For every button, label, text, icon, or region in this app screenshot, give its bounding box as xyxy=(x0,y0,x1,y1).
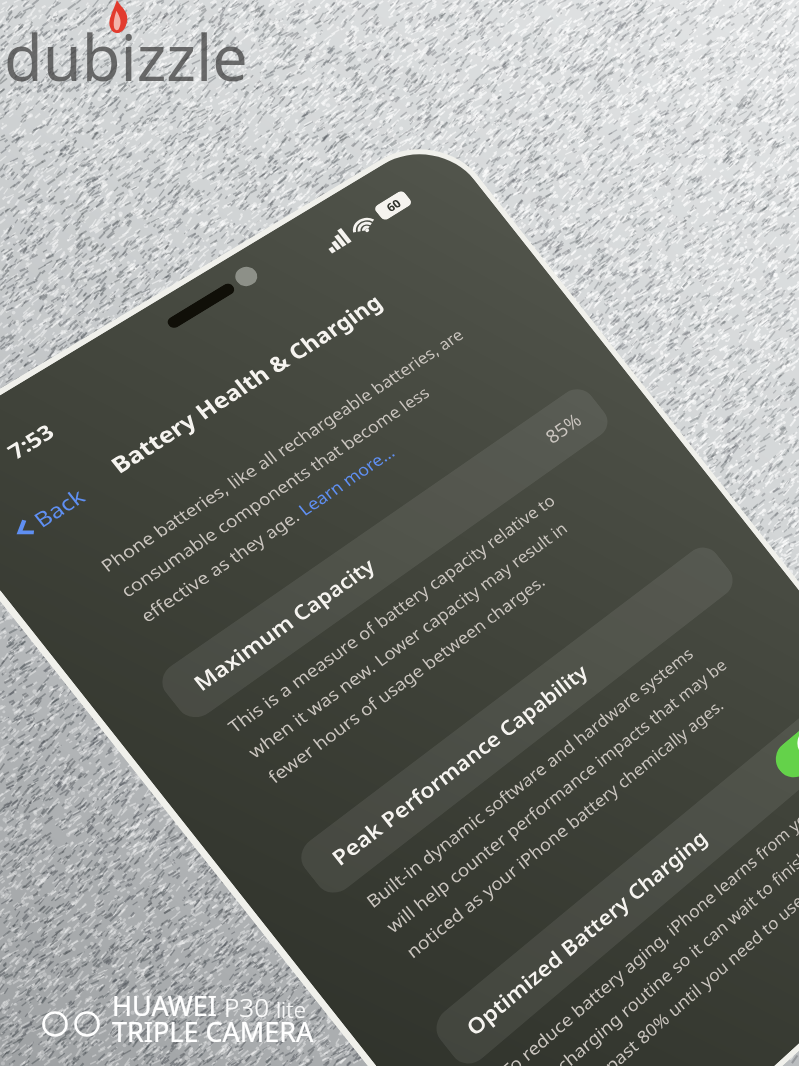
staticText: Optimized Battery Charging xyxy=(409,815,764,1049)
staticText: dubizzle xyxy=(4,14,248,100)
staticText: TRIPLE CAMERA xyxy=(112,1013,314,1050)
staticText: 85% xyxy=(536,405,591,452)
button[interactable]: Optimized Battery Charging xyxy=(343,681,799,1066)
staticText: 7:53 xyxy=(0,414,63,468)
staticText: P30 xyxy=(224,989,276,1024)
staticText: Maximum Capacity xyxy=(163,547,405,701)
staticText: To reduce battery aging, iPhone learns f… xyxy=(424,781,799,1066)
staticText: Back xyxy=(23,479,95,536)
button[interactable]: Peak Performance Capability xyxy=(222,529,799,912)
button[interactable]: Maximum Capacity xyxy=(97,373,676,734)
button[interactable]: Back xyxy=(0,479,97,551)
staticText: Phone batteries, like all rechargeable b… xyxy=(55,313,549,637)
other: Optimized Battery Charging toggle xyxy=(758,712,799,790)
staticText: Battery Health & Charging xyxy=(77,283,415,484)
staticText: This is a measure of battery capacity re… xyxy=(176,478,647,800)
staticText: 60 xyxy=(382,194,405,217)
staticText: HUAWEI xyxy=(112,987,224,1024)
staticText: Peak Performance Capability xyxy=(281,651,638,878)
staticText: lite xyxy=(276,994,306,1024)
staticText: Built-in dynamic software and hardware s… xyxy=(298,617,799,977)
